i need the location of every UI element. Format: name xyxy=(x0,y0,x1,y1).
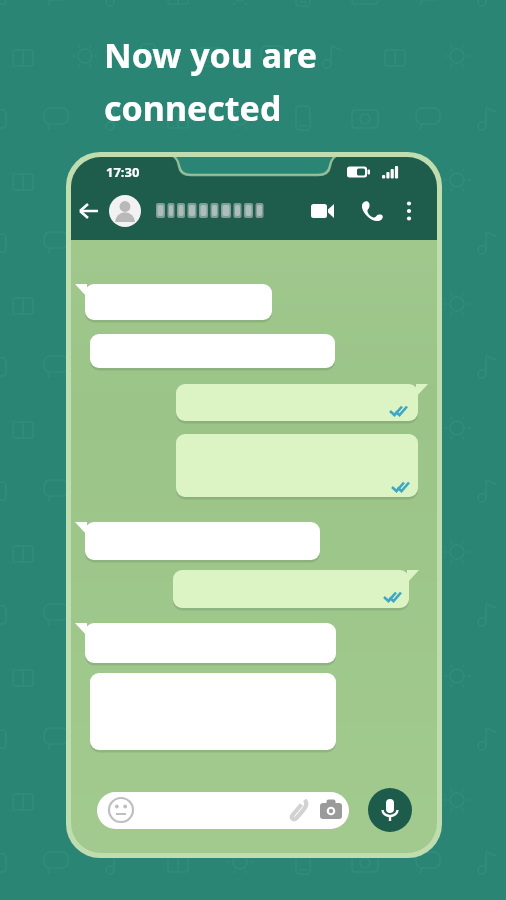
button[interactable]: Emoji xyxy=(100,788,146,832)
button[interactable]: Message input xyxy=(146,788,280,832)
button[interactable]: Record voice message xyxy=(366,788,414,832)
button[interactable]: Attach xyxy=(282,788,316,832)
button[interactable]: Video call xyxy=(300,186,346,236)
button[interactable]: Voice call xyxy=(350,186,396,236)
button[interactable]: Back xyxy=(66,186,116,236)
button[interactable]: More options xyxy=(392,186,428,236)
button[interactable]: Camera xyxy=(315,788,349,832)
